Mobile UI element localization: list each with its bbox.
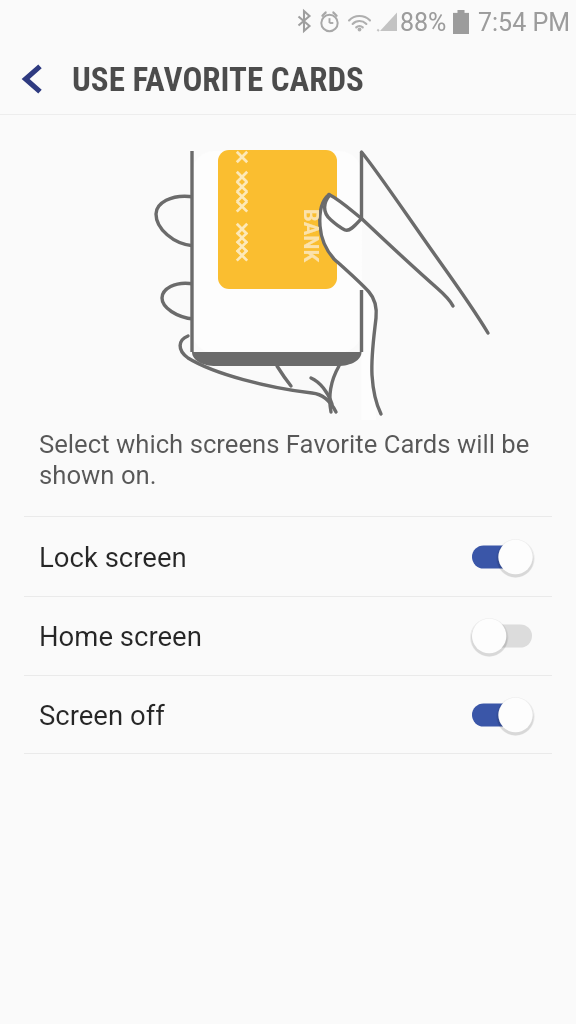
button[interactable]: On	[472, 539, 532, 575]
button[interactable]: Lock screen	[0, 517, 576, 596]
staticText: 88%	[400, 8, 447, 37]
button[interactable]: Screen off	[0, 676, 576, 753]
button[interactable]: On	[472, 697, 532, 733]
button[interactable]: Home screen	[0, 597, 576, 675]
button[interactable]: Navigate up	[0, 45, 68, 113]
staticText: Screen off	[39, 699, 165, 731]
button[interactable]: Off	[472, 618, 532, 654]
staticText: 7:54 PM	[478, 8, 571, 37]
staticText: Select which screens Favorite Cards will…	[39, 429, 530, 490]
staticText: USE FAVORITE CARDS	[72, 60, 364, 99]
staticText: BANK	[299, 209, 322, 263]
staticText: Lock screen	[39, 541, 187, 573]
staticText: Home screen	[39, 620, 202, 652]
